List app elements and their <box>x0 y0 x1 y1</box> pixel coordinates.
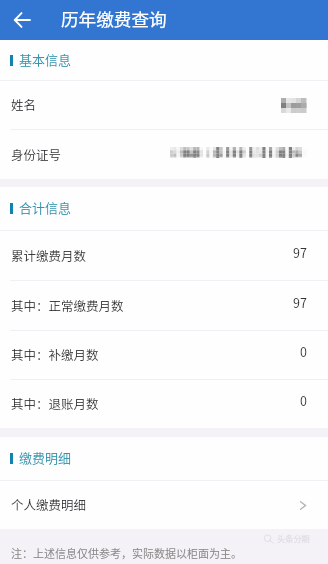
button[interactable]: 其中：补缴月数 <box>0 331 328 379</box>
staticText: 姓名 <box>11 95 37 113</box>
staticText: 合计信息 <box>19 198 72 217</box>
staticText: 0 <box>300 342 307 360</box>
staticText: 个人缴费明细 <box>11 495 87 513</box>
button[interactable]: 个人缴费明细 <box>0 481 328 529</box>
button[interactable]: 累计缴费月数 <box>0 231 328 280</box>
button[interactable]: 其中：退账月数 <box>0 380 328 428</box>
staticText: 注：上述信息仅供参考，实际数据以柜面为主。 <box>11 545 242 561</box>
staticText: 97 <box>293 243 307 261</box>
staticText: 累计缴费月数 <box>11 246 87 264</box>
staticText: 缴费明细 <box>19 448 72 467</box>
staticText: 0 <box>300 391 307 409</box>
staticText: 其中：正常缴费月数 <box>11 296 124 314</box>
staticText: 身份证号 <box>11 145 62 163</box>
staticText: 头条分期 <box>277 532 310 544</box>
staticText: 其中：退账月数 <box>11 394 99 412</box>
button[interactable]: 其中：正常缴费月数 <box>0 281 328 330</box>
button[interactable]: 身份证号 <box>0 130 328 179</box>
button[interactable]: 姓名 <box>0 81 328 129</box>
button[interactable]: Back <box>3 1 41 39</box>
staticText: 97 <box>293 293 307 311</box>
staticText: 基本信息 <box>19 50 72 69</box>
staticText: 历年缴费查询 <box>61 6 167 31</box>
staticText: 其中：补缴月数 <box>11 345 99 363</box>
